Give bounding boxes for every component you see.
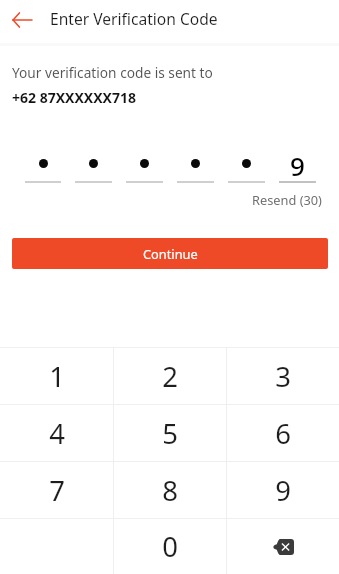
button[interactable]: 9 — [227, 462, 339, 518]
button[interactable]: Back — [0, 0, 44, 43]
staticText: 9 — [290, 148, 305, 183]
button[interactable]: 6 — [227, 405, 339, 461]
staticText: Enter Verification Code — [50, 8, 218, 29]
staticText: 0 — [162, 528, 178, 565]
button[interactable]: Resend (30) — [252, 191, 322, 208]
other: Backspace — [272, 539, 294, 555]
button[interactable]: 1 — [0, 348, 113, 404]
staticText: 9 — [275, 472, 291, 509]
staticText: 2 — [162, 358, 178, 395]
button[interactable]: Backspace — [227, 519, 339, 574]
button[interactable] — [25, 148, 61, 183]
staticText: 4 — [49, 415, 65, 452]
button[interactable] — [75, 148, 112, 183]
button[interactable]: Continue — [12, 238, 328, 269]
button[interactable] — [228, 148, 265, 183]
button[interactable]: 9 — [279, 148, 316, 183]
staticText: 6 — [275, 415, 291, 452]
staticText: Your verification code is sent to — [12, 63, 213, 82]
staticText: 8 — [162, 472, 178, 509]
button[interactable]: 3 — [227, 348, 339, 404]
staticText: 5 — [162, 415, 178, 452]
button[interactable] — [177, 148, 214, 183]
staticText: +62 87XXXXXX718 — [12, 88, 136, 107]
button[interactable]: 2 — [114, 348, 226, 404]
button[interactable]: 0 — [114, 519, 226, 574]
staticText: 1 — [49, 358, 65, 395]
button[interactable]: 4 — [0, 405, 113, 461]
button[interactable] — [126, 148, 163, 183]
button[interactable]: 8 — [114, 462, 226, 518]
staticText: Continue — [143, 245, 198, 262]
button[interactable]: 7 — [0, 462, 113, 518]
staticText: 7 — [49, 472, 65, 509]
staticText: 3 — [275, 358, 291, 395]
button[interactable]: 5 — [114, 405, 226, 461]
